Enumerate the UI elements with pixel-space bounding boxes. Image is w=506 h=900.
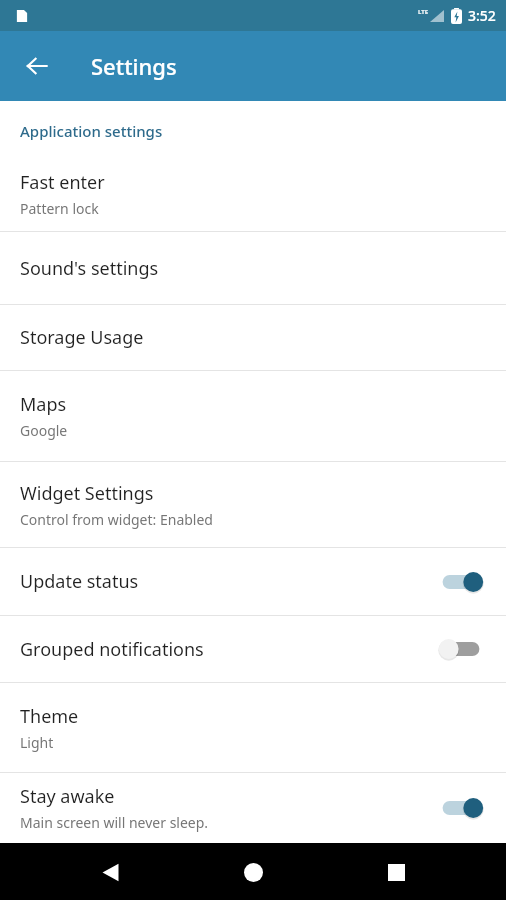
button[interactable]: Storage Usage xyxy=(0,305,506,370)
staticText: Pattern lock xyxy=(20,199,99,218)
button[interactable]: Theme xyxy=(0,683,506,772)
staticText: Fast enter xyxy=(20,170,105,195)
button[interactable]: Maps xyxy=(0,371,506,461)
button[interactable]: Back xyxy=(86,848,134,896)
staticText: Control from widget: Enabled xyxy=(20,510,213,529)
button[interactable]: Update status xyxy=(0,548,506,615)
staticText: Google xyxy=(20,421,68,440)
staticText: Grouped notifications xyxy=(20,637,204,662)
staticText: Light xyxy=(20,733,54,752)
staticText: Theme xyxy=(20,704,79,729)
button[interactable]: Toggle on xyxy=(438,793,484,823)
staticText: Settings xyxy=(91,51,177,81)
staticText: Update status xyxy=(20,569,139,594)
button[interactable]: Home xyxy=(229,848,277,896)
staticText: Stay awake xyxy=(20,784,115,809)
staticText: 3:52 xyxy=(468,6,496,25)
staticText: Main screen will never sleep. xyxy=(20,813,209,832)
staticText: LTE xyxy=(418,8,429,16)
button[interactable]: Fast enter xyxy=(0,157,506,231)
button[interactable]: Grouped notifications xyxy=(0,616,506,682)
button[interactable]: Toggle on xyxy=(438,567,484,597)
button[interactable]: Recent apps xyxy=(372,848,420,896)
staticText: Application settings xyxy=(20,121,163,141)
button[interactable]: Widget Settings xyxy=(0,462,506,547)
staticText: Sound's settings xyxy=(20,256,159,281)
button[interactable]: Sound's settings xyxy=(0,232,506,304)
button[interactable]: Stay awake xyxy=(0,773,506,843)
button[interactable]: Toggle off xyxy=(438,634,484,664)
staticText: Maps xyxy=(20,392,67,417)
staticText: Widget Settings xyxy=(20,481,154,506)
staticText: Storage Usage xyxy=(20,325,144,350)
button[interactable]: Back xyxy=(13,42,61,90)
